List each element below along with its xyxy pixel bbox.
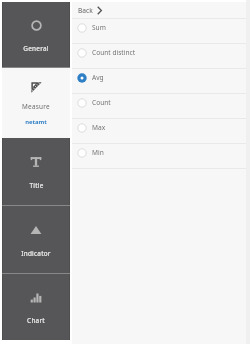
button[interactable]: Count distinct	[72, 44, 246, 68]
button[interactable]: Sum	[72, 19, 246, 43]
staticText: Measure	[22, 102, 50, 111]
button[interactable]: Avg	[72, 69, 246, 93]
staticText: Max	[92, 123, 106, 132]
other: Chart	[30, 292, 42, 304]
staticText: Min	[92, 148, 104, 157]
button[interactable]: Count	[72, 94, 246, 118]
staticText: Back	[78, 6, 93, 15]
staticText: Sum	[92, 23, 106, 32]
other: Title	[30, 156, 42, 168]
staticText: General	[23, 44, 49, 53]
other: Measure	[31, 82, 42, 93]
other: General	[31, 20, 42, 31]
button[interactable]: Min	[72, 144, 246, 168]
button[interactable]: Chart	[2, 274, 70, 340]
button[interactable]: Indicator	[2, 206, 70, 274]
other: Indicator	[30, 224, 42, 236]
staticText: Count	[92, 98, 111, 107]
button[interactable]: Measure	[2, 68, 70, 138]
button[interactable]: Back	[72, 2, 246, 18]
button[interactable]: Title	[2, 138, 70, 206]
staticText: netamt	[25, 118, 47, 126]
button[interactable]: Max	[72, 119, 246, 143]
staticText: Avg	[92, 73, 104, 82]
staticText: Count distinct	[92, 48, 136, 57]
staticText: Title	[29, 181, 44, 190]
staticText: Chart	[27, 316, 45, 325]
staticText: Indicator	[21, 249, 51, 258]
button[interactable]: General	[2, 2, 70, 68]
